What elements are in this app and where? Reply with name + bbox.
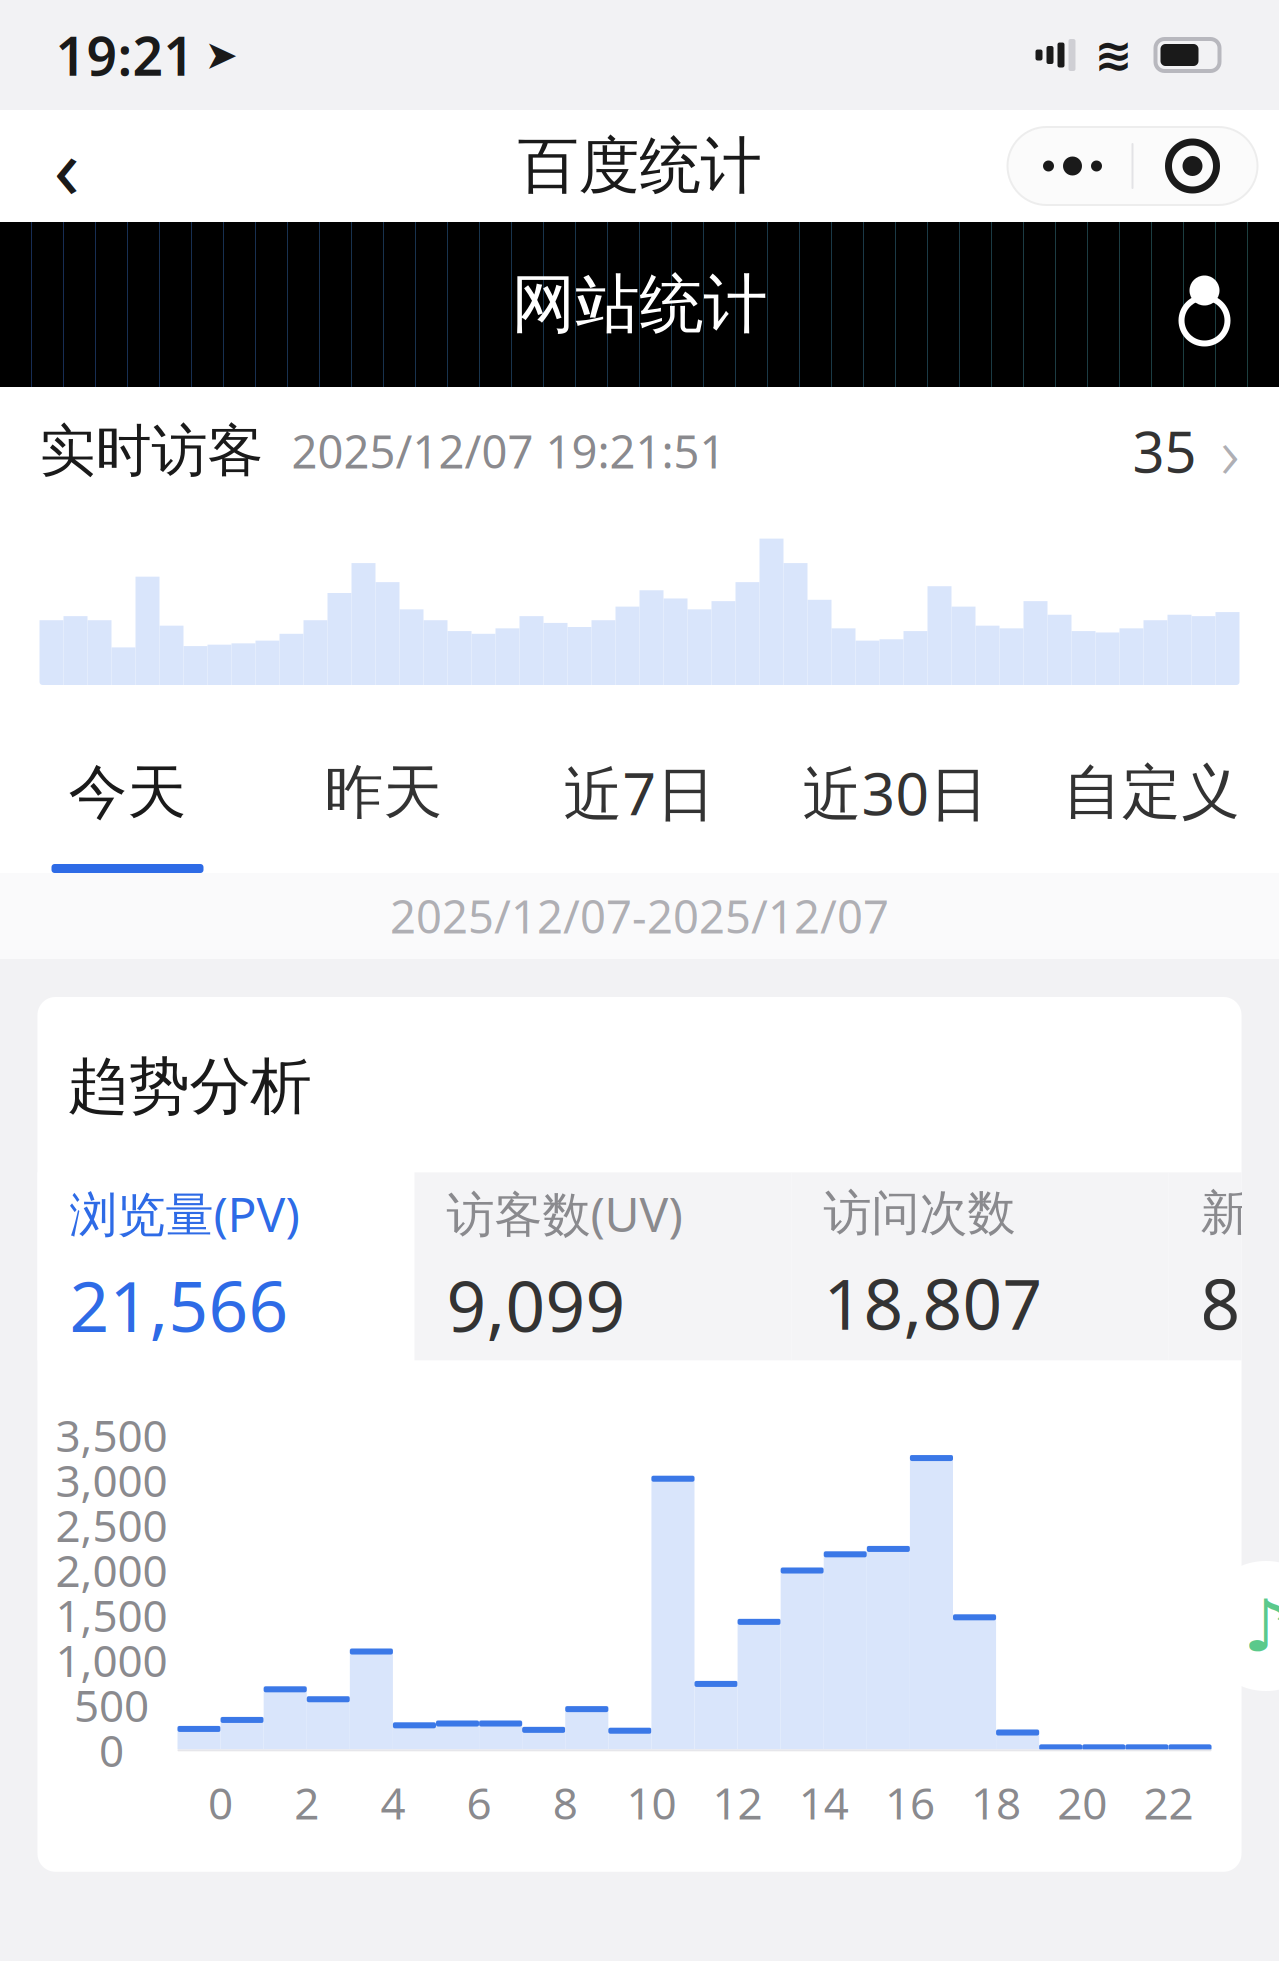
- button[interactable]: 近30日: [767, 721, 1023, 873]
- staticText: 2025/12/07-2025/12/07: [390, 886, 889, 946]
- staticText: ♪: [1243, 1585, 1279, 1667]
- staticText: 0: [99, 1721, 124, 1779]
- staticText: 访客数(UV): [446, 1181, 682, 1245]
- staticText: 9,099: [446, 1259, 625, 1351]
- staticText: 访问次数: [823, 1184, 1015, 1243]
- staticText: 自定义: [1063, 756, 1240, 829]
- staticText: 19:21: [55, 20, 194, 90]
- staticText: 8: [553, 1773, 578, 1832]
- button[interactable]: 访客数(UV): [414, 1147, 791, 1385]
- staticText: 12: [713, 1773, 763, 1832]
- staticText: 0: [208, 1773, 233, 1832]
- staticText: 4: [380, 1773, 405, 1832]
- button[interactable]: 浏览量(PV): [37, 1147, 414, 1385]
- staticText: 14: [799, 1773, 849, 1832]
- staticText: ‹: [53, 109, 79, 223]
- staticText: 浏览量(PV): [69, 1181, 299, 1245]
- staticText: 实时访客: [39, 417, 263, 485]
- button[interactable]: 昨天: [255, 721, 511, 873]
- staticText: ≋: [1094, 29, 1132, 81]
- staticText: 35: [1132, 414, 1196, 488]
- button[interactable]: 新访客数: [1168, 1150, 1279, 1383]
- staticText: 1,500: [55, 1586, 167, 1644]
- staticText: ›: [1220, 403, 1239, 499]
- staticText: 500: [74, 1676, 149, 1734]
- staticText: 21,566: [69, 1259, 288, 1351]
- staticText: 18: [971, 1773, 1021, 1832]
- staticText: 近30日: [802, 753, 988, 831]
- staticText: 18,807: [823, 1257, 1042, 1349]
- staticText: 8,455: [1200, 1257, 1279, 1349]
- staticText: 今天: [68, 756, 186, 829]
- button[interactable]: 今天: [0, 721, 255, 873]
- staticText: 22: [1143, 1773, 1193, 1832]
- staticText: 1,000: [55, 1631, 167, 1689]
- staticText: 昨天: [324, 756, 442, 829]
- staticText: 3,000: [55, 1451, 167, 1509]
- staticText: 6: [467, 1773, 492, 1832]
- staticText: 趋势分析: [67, 1049, 311, 1124]
- staticText: 近7日: [563, 753, 715, 831]
- staticText: 10: [626, 1773, 676, 1832]
- button[interactable]: Music: [1201, 1561, 1279, 1691]
- button[interactable]: Account: [1159, 259, 1249, 349]
- staticText: 百度统计: [517, 128, 761, 204]
- staticText: 2,500: [55, 1496, 167, 1554]
- staticText: 网站统计: [511, 265, 767, 344]
- staticText: 2025/12/07 19:21:51: [291, 421, 725, 481]
- staticText: 新访客数: [1200, 1184, 1279, 1243]
- button[interactable]: 访问次数: [791, 1150, 1168, 1383]
- staticText: 2: [294, 1773, 319, 1832]
- button[interactable]: Back: [21, 121, 111, 211]
- button[interactable]: Mini program menu: [1007, 127, 1257, 205]
- button[interactable]: 实时访客: [0, 387, 1279, 515]
- button[interactable]: 近7日: [511, 721, 767, 873]
- staticText: ➤: [204, 32, 238, 78]
- button[interactable]: 自定义: [1023, 721, 1279, 873]
- staticText: 16: [885, 1773, 935, 1832]
- staticText: 2,000: [55, 1541, 167, 1599]
- staticText: 3,500: [55, 1406, 167, 1464]
- staticText: 20: [1057, 1773, 1107, 1832]
